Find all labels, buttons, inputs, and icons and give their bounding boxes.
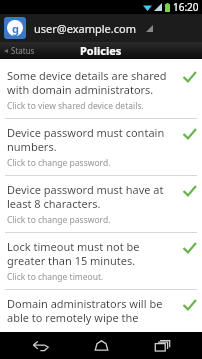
other: Policy enforced — [181, 240, 197, 256]
staticText: Domain administrators will be able to re… — [7, 296, 177, 326]
button[interactable]: Device password must have at least 8 cha… — [0, 176, 202, 232]
staticText: 16:20 — [173, 0, 199, 14]
staticText: Lock timeout must not be greater than 15… — [7, 239, 177, 268]
staticText: user@example.com — [34, 21, 136, 36]
button[interactable]: g — [0, 14, 202, 42]
staticText: g — [12, 21, 19, 36]
staticText: Some device details are shared with doma… — [7, 68, 177, 97]
other: Policy enforced — [181, 126, 197, 142]
staticText: Click to view shared device details. — [7, 100, 144, 112]
button[interactable]: Domain administrators will be able to re… — [0, 290, 202, 332]
staticText: Click to change timeout. — [7, 271, 104, 283]
staticText: Device password must contain numbers. — [7, 125, 177, 154]
button[interactable]: Back — [21, 332, 61, 359]
other: Policy enforced — [181, 297, 197, 313]
staticText: Click to change password. — [7, 157, 111, 169]
button[interactable]: Home — [81, 332, 121, 359]
staticText: Device password must have at least 8 cha… — [7, 182, 177, 211]
other: Policy enforced — [181, 69, 197, 85]
staticText: Status — [11, 45, 35, 56]
staticText: Click to change password. — [7, 214, 111, 226]
button[interactable]: Recent apps — [142, 332, 182, 359]
button[interactable]: Status — [0, 42, 60, 59]
button[interactable]: Device password must contain numbers. — [0, 119, 202, 175]
staticText: Policies — [80, 43, 122, 58]
button[interactable]: Some device details are shared with doma… — [0, 62, 202, 118]
button[interactable]: Lock timeout must not be greater than 15… — [0, 233, 202, 289]
button[interactable]: Policies — [61, 42, 141, 59]
other: Policy enforced — [181, 183, 197, 199]
